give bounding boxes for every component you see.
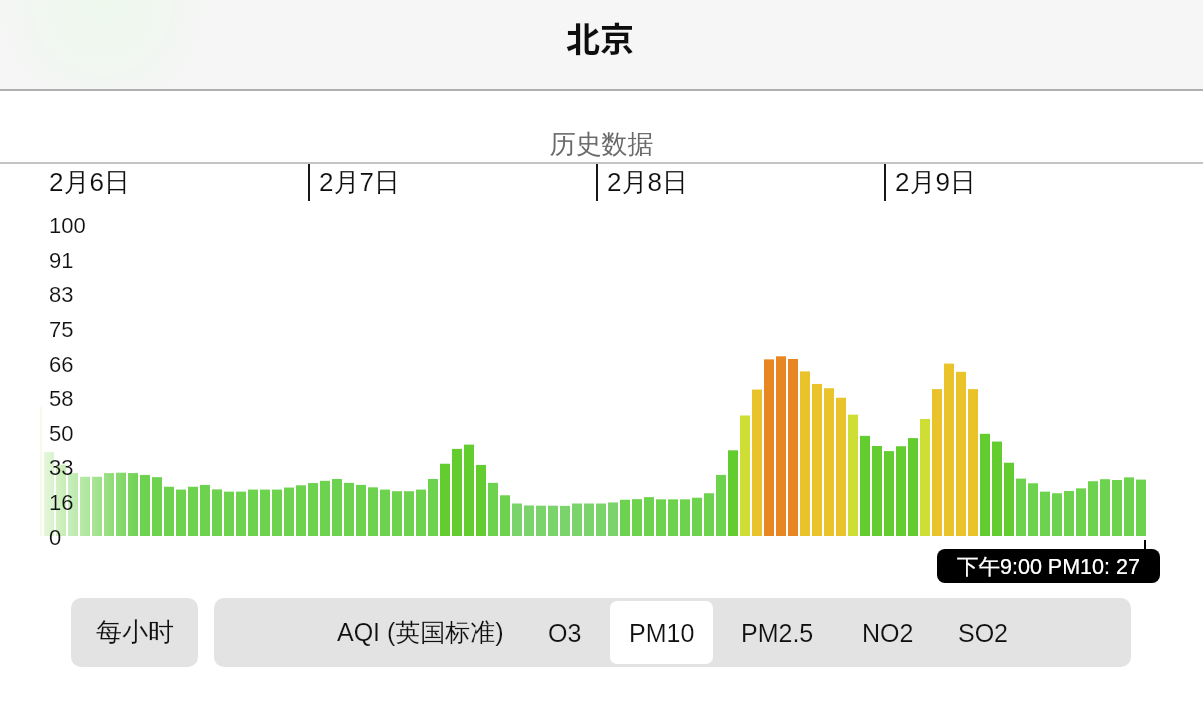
staticText: SO2: [958, 619, 1009, 647]
button[interactable]: AQI (英国标准): [337, 602, 504, 663]
staticText: NO2: [862, 619, 914, 647]
button[interactable]: SO2: [958, 602, 1009, 663]
staticText: 下午9:00 PM10: 27: [957, 553, 1140, 580]
button[interactable]: 下午9:00 PM10: 27: [937, 549, 1160, 583]
staticText: PM10: [629, 619, 695, 647]
staticText: 历史数据: [0, 128, 1203, 161]
staticText: AQI (英国标准): [337, 617, 504, 648]
staticText: 北京: [566, 13, 634, 62]
staticText: 33: [49, 455, 74, 480]
staticText: 每小时: [96, 616, 174, 649]
staticText: PM2.5: [741, 619, 814, 647]
staticText: 2月7日: [319, 166, 400, 199]
button[interactable]: 北京: [0, 0, 1203, 89]
staticText: 0: [49, 525, 62, 550]
staticText: 2月8日: [607, 166, 688, 199]
staticText: 91: [49, 248, 74, 273]
button[interactable]: PM10: [610, 601, 713, 664]
staticText: 2月9日: [895, 166, 976, 199]
button[interactable]: NO2: [862, 602, 914, 663]
button[interactable]: PM2.5: [741, 602, 814, 663]
button[interactable]: O3: [548, 602, 582, 663]
staticText: O3: [548, 619, 582, 647]
staticText: 83: [49, 282, 74, 307]
button[interactable]: 每小时: [71, 598, 198, 667]
staticText: 100: [49, 213, 86, 238]
staticText: 58: [49, 386, 74, 411]
staticText: 2月6日: [49, 166, 130, 199]
staticText: 16: [49, 490, 74, 515]
staticText: 66: [49, 352, 74, 377]
staticText: 75: [49, 317, 74, 342]
staticText: 50: [49, 421, 74, 446]
